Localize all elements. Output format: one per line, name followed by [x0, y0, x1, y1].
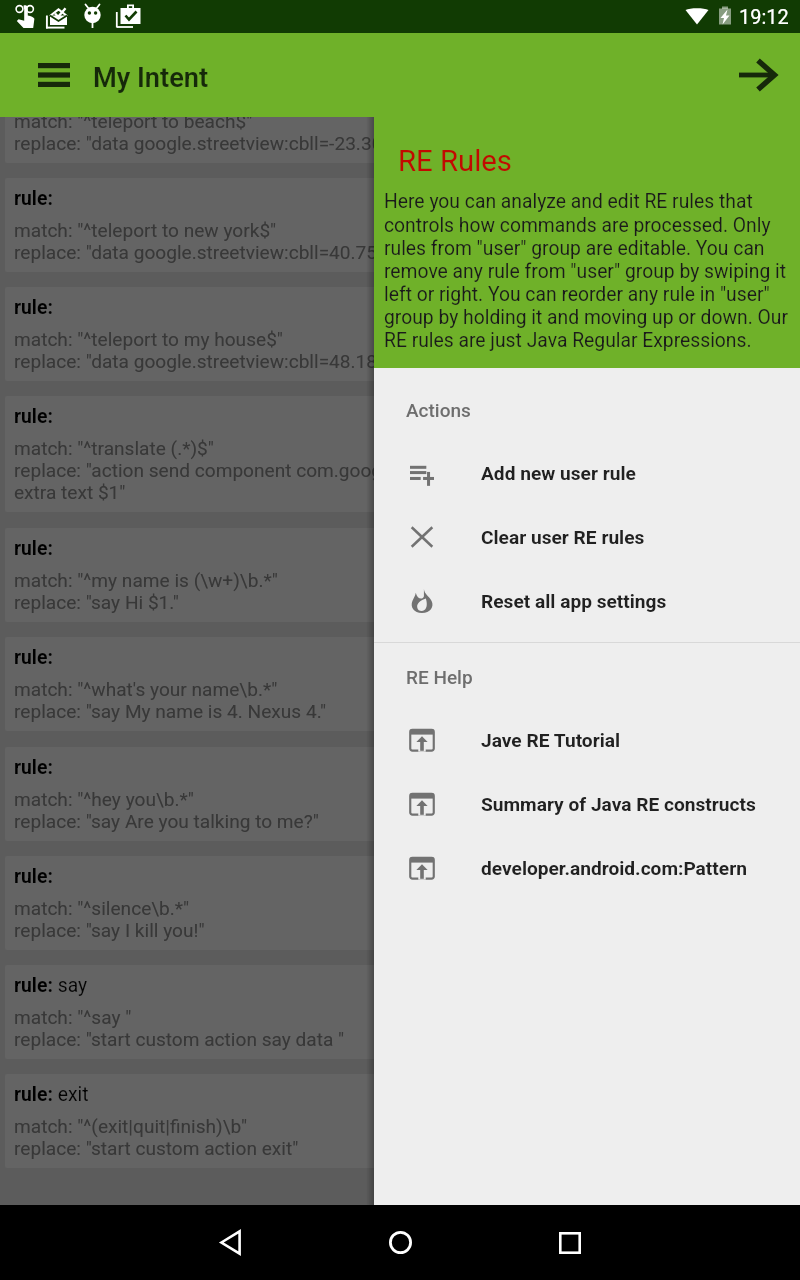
staticText: replace: "action send component com.goog [14, 459, 383, 481]
button[interactable]: Clear user RE rules [374, 505, 800, 569]
button[interactable]: rule: [5, 637, 796, 731]
staticText: match: "^(exit|quit|finish)\b" [14, 1115, 248, 1137]
button[interactable]: Jave RE Tutorial [374, 708, 800, 772]
button[interactable]: Add new user rule [374, 441, 800, 505]
staticText: replace: "data google.streetview:cbll=-2… [14, 132, 383, 154]
staticText: rule: [14, 78, 53, 101]
staticText: rule: [14, 537, 53, 560]
staticText: rule: [14, 1083, 53, 1106]
button[interactable]: Open navigation drawer [22, 43, 86, 107]
button[interactable]: Recent apps [536, 1205, 604, 1280]
staticText: rule: [14, 646, 53, 669]
staticText: match: "^my name is (\w+)\b.*" [14, 569, 278, 591]
staticText: My Intent [93, 62, 209, 94]
staticText: Here you can analyze and edit RE rules t… [384, 190, 796, 351]
staticText: rule: [14, 405, 53, 428]
staticText: rule: [14, 187, 53, 210]
button[interactable]: Summary of Java RE constructs [374, 772, 800, 836]
staticText: Actions [406, 399, 471, 421]
staticText: Jave RE Tutorial [481, 729, 621, 751]
staticText: match: "^teleport to new york$" [14, 219, 277, 241]
staticText: exit [53, 1083, 89, 1106]
staticText: match: "^translate (.*)$" [14, 437, 214, 459]
staticText: say [53, 974, 88, 997]
staticText: Summary of Java RE constructs [481, 793, 756, 815]
staticText: rule: [14, 756, 53, 779]
button[interactable]: Home [366, 1205, 434, 1280]
staticText: Clear user RE rules [481, 526, 645, 548]
button[interactable]: rule: [5, 1074, 796, 1168]
staticText: rule: [14, 974, 53, 997]
staticText: rule: [14, 296, 53, 319]
staticText: Reset all app settings [481, 590, 667, 612]
staticText: 19:12 [739, 5, 789, 28]
staticText: match: "^teleport to my house$" [14, 328, 283, 350]
button[interactable]: Send intent [725, 43, 789, 107]
staticText: replace: "say Hi $1." [14, 591, 179, 613]
staticText: extra text $1" [14, 481, 126, 503]
staticText: match: "^hey you\b.*" [14, 788, 194, 810]
button[interactable]: rule: [5, 528, 796, 622]
staticText: replace: "data google.streetview:cbll=40… [14, 241, 378, 263]
staticText: replace: "say Are you talking to me?" [14, 810, 319, 832]
staticText: rule: [14, 865, 53, 888]
button[interactable]: rule: [5, 856, 796, 950]
button[interactable]: Back [196, 1205, 264, 1280]
staticText: match: "^silence\b.*" [14, 897, 190, 919]
button[interactable]: rule: [5, 747, 796, 841]
button[interactable]: rule: [5, 178, 796, 272]
button[interactable]: rule: [5, 396, 796, 512]
staticText: replace: "data google.streetview:cbll=48… [14, 350, 378, 372]
staticText: replace: "start custom action exit" [14, 1137, 299, 1159]
button[interactable]: developer.android.com:Pattern [374, 836, 800, 900]
staticText: RE Rules [398, 144, 512, 178]
button[interactable]: Reset all app settings [374, 569, 800, 633]
staticText: Add new user rule [481, 462, 636, 484]
staticText: developer.android.com:Pattern [481, 857, 747, 879]
staticText: RE Help [406, 666, 473, 688]
button[interactable]: rule: [5, 965, 796, 1059]
staticText: match: "^what's your name\b.*" [14, 678, 278, 700]
staticText: match: "^say " [14, 1006, 132, 1028]
button[interactable]: rule: [5, 69, 796, 163]
staticText: replace: "say My name is 4. Nexus 4." [14, 700, 327, 722]
staticText: match: "^teleport to beach$" [14, 110, 253, 132]
button[interactable]: rule: [5, 287, 796, 381]
staticText: replace: "start custom action say data " [14, 1028, 345, 1050]
staticText: replace: "say I kill you!" [14, 919, 205, 941]
